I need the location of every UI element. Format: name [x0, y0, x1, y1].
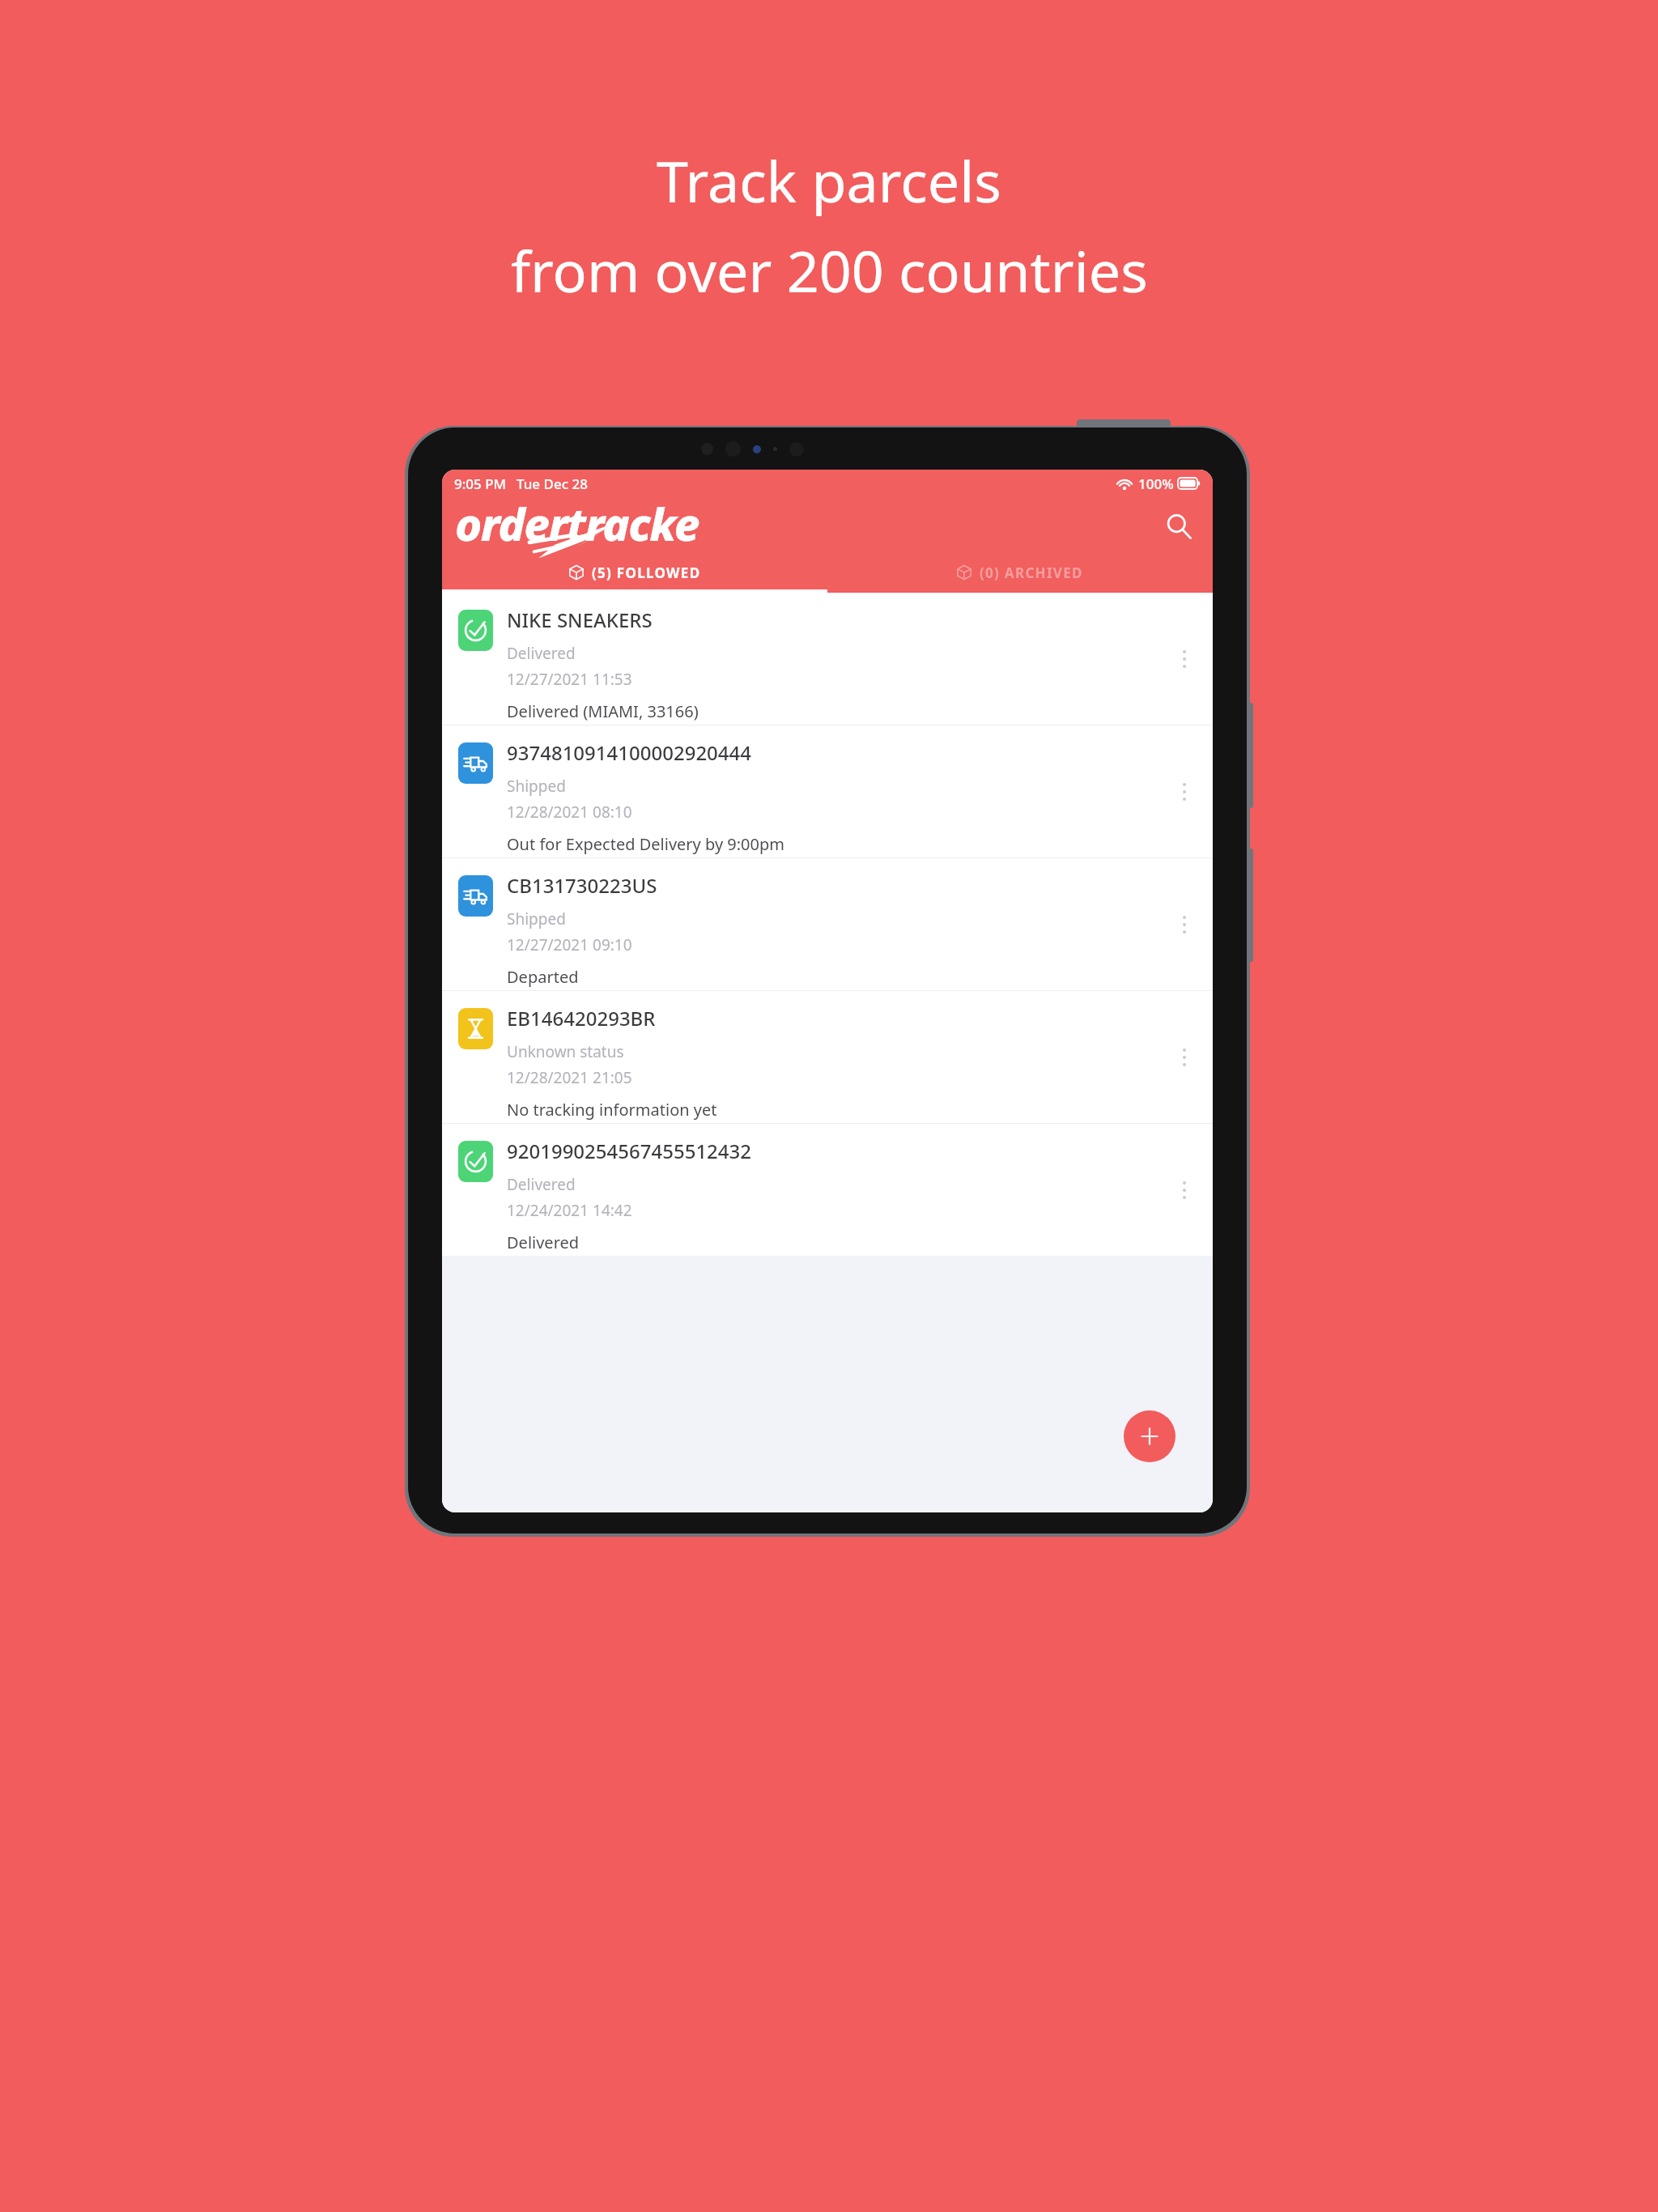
- button[interactable]: (5) FOLLOWED: [442, 552, 827, 593]
- staticText: Unknown status: [507, 1041, 624, 1062]
- staticText: No tracking information yet: [507, 1099, 717, 1121]
- button[interactable]: NIKE SNEAKERS: [442, 593, 1213, 725]
- button[interactable]: Add parcel: [1124, 1410, 1175, 1462]
- staticText: from over 200 countries: [511, 232, 1148, 308]
- staticText: NIKE SNEAKERS: [507, 606, 653, 633]
- staticText: 12/27/2021 09:10: [507, 934, 632, 955]
- staticText: 12/28/2021 08:10: [507, 802, 632, 823]
- staticText: 12/27/2021 11:53: [507, 669, 632, 690]
- staticText: Shipped: [507, 776, 566, 797]
- staticText: 9:05 PM: [454, 474, 507, 493]
- button[interactable]: Search: [1156, 504, 1201, 549]
- button[interactable]: More options: [1166, 768, 1203, 816]
- staticText: Delivered: [507, 1231, 580, 1253]
- staticText: 12/28/2021 21:05: [507, 1067, 632, 1088]
- button[interactable]: CB131730223US: [442, 858, 1213, 990]
- staticText: 100%: [1138, 474, 1174, 493]
- staticText: Shipped: [507, 908, 566, 929]
- button[interactable]: EB146420293BR: [442, 991, 1213, 1123]
- staticText: ordertracker: [455, 492, 714, 557]
- staticText: Delivered (MIAMI, 33166): [507, 700, 699, 722]
- button[interactable]: (0) ARCHIVED: [827, 552, 1213, 593]
- button[interactable]: More options: [1166, 635, 1203, 683]
- staticText: (5) FOLLOWED: [592, 564, 701, 582]
- staticText: 9374810914100002920444: [507, 739, 752, 766]
- staticText: CB131730223US: [507, 872, 657, 899]
- staticText: Track parcels: [657, 142, 1001, 219]
- button[interactable]: 9201990254567455512432: [442, 1124, 1213, 1256]
- button[interactable]: More options: [1166, 1033, 1203, 1082]
- staticText: Delivered: [507, 1174, 576, 1195]
- staticText: EB146420293BR: [507, 1005, 656, 1032]
- button[interactable]: More options: [1166, 1166, 1203, 1214]
- staticText: 12/24/2021 14:42: [507, 1200, 632, 1221]
- staticText: Delivered: [507, 643, 576, 664]
- button[interactable]: More options: [1166, 900, 1203, 949]
- staticText: (0) ARCHIVED: [980, 564, 1083, 582]
- staticText: 9201990254567455512432: [507, 1138, 752, 1164]
- staticText: Tue Dec 28: [517, 474, 588, 493]
- staticText: Departed: [507, 966, 579, 988]
- button[interactable]: 9374810914100002920444: [442, 725, 1213, 857]
- staticText: Out for Expected Delivery by 9:00pm: [507, 833, 784, 855]
